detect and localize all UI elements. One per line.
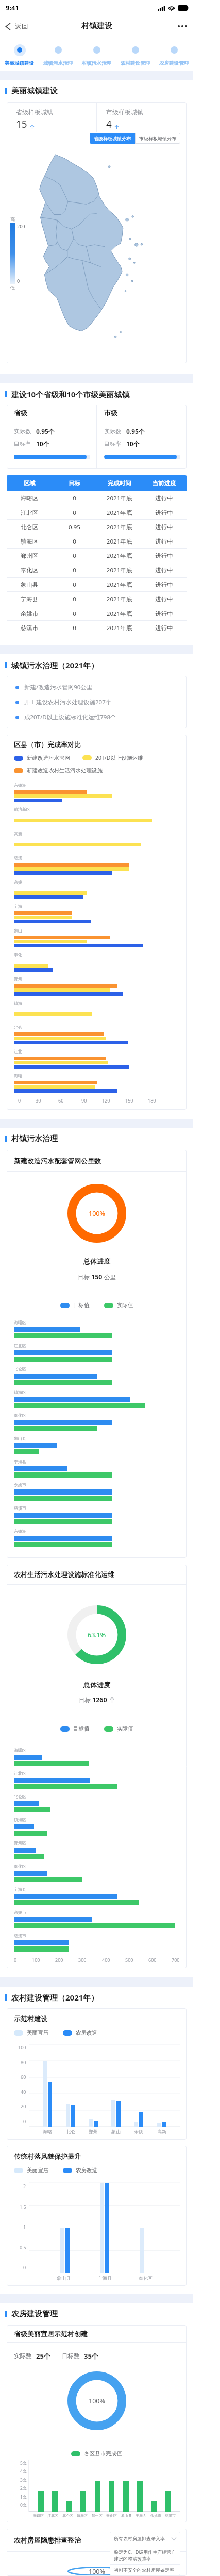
staticText: 目标 [78, 1273, 91, 1281]
staticText: 100 [32, 1957, 40, 1963]
staticText: 海曙 [14, 1073, 22, 1078]
staticText: 500 [125, 1957, 133, 1963]
staticText: 东钱湖 [14, 783, 26, 788]
staticText: 180 [148, 1097, 156, 1104]
staticText: 村镇污水治理 [82, 60, 111, 66]
staticText: 30 [36, 1097, 41, 1104]
staticText: 农房建设管理 [159, 60, 189, 66]
staticText: 北仑区 [14, 1794, 26, 1799]
button[interactable]: 余姚市 [7, 606, 187, 620]
button[interactable]: 北仑区 [7, 520, 187, 534]
staticText: 0 [52, 552, 97, 560]
staticText: 村镇建设 [81, 21, 112, 31]
staticText: 0 [52, 566, 97, 574]
staticText: 北仑 [66, 2129, 75, 2134]
staticText: 宁海县 [14, 1459, 26, 1464]
staticText: 进行中 [142, 538, 187, 545]
staticText: 海曙 [43, 2129, 52, 2134]
staticText: 目标率 [104, 440, 121, 447]
staticText: 城镇污水治理 [43, 60, 73, 66]
staticText: 完成时间 [97, 480, 142, 487]
staticText: 2021年底 [97, 566, 142, 574]
button[interactable]: 奉化区 [7, 563, 187, 577]
staticText: 0.95个 [36, 427, 55, 435]
staticText: 高新 [14, 831, 22, 836]
staticText: 余姚市 [14, 1482, 26, 1487]
staticText: 余姚 [134, 2129, 143, 2134]
button[interactable]: 江北区 [7, 505, 187, 519]
staticText: 进行中 [142, 495, 187, 502]
staticText: 0 [52, 537, 97, 546]
button[interactable]: 海曙区 [7, 491, 187, 505]
staticText: 0 [23, 2264, 26, 2270]
button[interactable]: 初判不安全的农村房屋鉴定率 [110, 2565, 180, 2575]
button[interactable]: 农房建设管理 [155, 37, 193, 71]
staticText: 北仑区 [7, 523, 52, 531]
staticText: 1.5 [20, 2204, 26, 2210]
staticText: 所有农村房屋排查录入率 [114, 2536, 172, 2541]
button[interactable]: 美丽城镇建设 [0, 37, 39, 71]
staticText: 目标数 [62, 2352, 80, 2360]
staticText: 20 [21, 2103, 26, 2109]
button[interactable]: 返回 [0, 19, 32, 33]
staticText: 鄞州区 [14, 1840, 26, 1845]
staticText: 进行中 [142, 624, 187, 632]
staticText: 奉化区 [7, 567, 52, 574]
staticText: 象山 [111, 2129, 121, 2134]
button[interactable]: 鄞州区 [7, 549, 187, 563]
button[interactable]: 慈溪市 [7, 621, 187, 635]
staticText: 10个 [126, 439, 140, 448]
staticText: 2套 [20, 2485, 27, 2492]
staticText: 100% [89, 2567, 105, 2576]
button[interactable]: More options [172, 19, 193, 33]
staticText: 象山县 [14, 1436, 26, 1441]
staticText: 镇海区 [77, 2513, 88, 2518]
staticText: 海曙区 [7, 495, 52, 502]
staticText: 0 [52, 494, 97, 502]
staticText: 当前进度 [142, 480, 187, 487]
staticText: 目标值 [73, 1302, 90, 1309]
staticText: 余姚市 [7, 610, 52, 617]
staticText: 3套 [20, 2477, 27, 2483]
staticText: 0 [52, 609, 97, 618]
staticText: 北仑 [14, 1025, 22, 1030]
staticText: 城镇污水治理（2021年） [11, 660, 99, 670]
staticText: 镇海区 [14, 1817, 26, 1822]
button[interactable]: 象山县 [7, 578, 187, 591]
staticText: 余姚市 [150, 2513, 161, 2518]
staticText: 1260 [92, 1696, 107, 1704]
staticText: 0.95个 [126, 427, 145, 435]
button[interactable]: 宁海县 [7, 592, 187, 606]
button[interactable]: 省级样板城镇 [7, 102, 96, 132]
staticText: 2021年底 [97, 552, 142, 560]
staticText: 象山县 [121, 2513, 132, 2518]
staticText: 1 [23, 2224, 26, 2230]
staticText: 象山 [14, 928, 22, 933]
button[interactable]: 鉴定为C、D级用作生产经营自建房的整治改造率 [110, 2546, 180, 2564]
button[interactable]: 城镇污水治理 [39, 37, 77, 71]
staticText: 新建改造农村生活污水处理设施 [27, 767, 103, 774]
staticText: 宁海县 [98, 2275, 112, 2281]
staticText: 奉化区 [14, 1863, 26, 1869]
staticText: 2021年底 [97, 595, 142, 603]
staticText: 奉化 [14, 952, 22, 957]
staticText: 0.95 [52, 523, 97, 531]
button[interactable]: 市级样板城镇 [97, 102, 187, 132]
staticText: 镇海区 [7, 538, 52, 545]
staticText: 4 [106, 117, 112, 131]
staticText: 鉴定为C、D级用作生产经营自建房的整治改造率 [114, 2549, 176, 2562]
button[interactable]: 农村建设管理 [116, 37, 155, 71]
staticText: 海曙区 [33, 2513, 44, 2518]
button[interactable]: 市级样板城镇分布 [135, 133, 180, 144]
button[interactable]: 省级样板城镇分布 [90, 133, 135, 144]
staticText: 700 [172, 1957, 180, 1963]
staticText: 高 [10, 216, 15, 222]
button[interactable]: 所有农村房屋排查录入率 [110, 2532, 180, 2546]
button[interactable]: 镇海区 [7, 534, 187, 548]
staticText: 0套 [20, 2502, 27, 2509]
staticText: 江北区 [7, 509, 52, 516]
button[interactable]: 村镇污水治理 [77, 37, 116, 71]
staticText: 0 [52, 581, 97, 589]
staticText: 余姚市 [14, 1910, 26, 1915]
staticText: 农村建设管理 [121, 60, 150, 66]
